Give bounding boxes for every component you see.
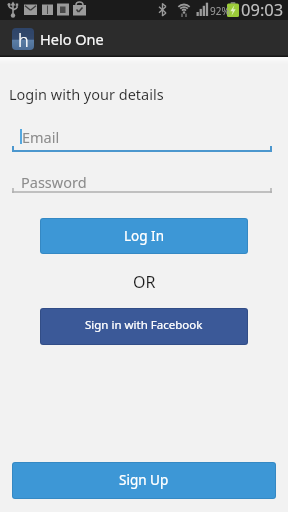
staticText: Helo One: [40, 29, 104, 49]
staticText: Sign in with Facebook: [85, 317, 203, 333]
staticText: Login with your details: [9, 84, 164, 104]
staticText: Sign Up: [119, 471, 169, 489]
button[interactable]: Log In: [40, 218, 248, 254]
staticText: OR: [133, 271, 156, 291]
button[interactable]: Sign Up: [12, 462, 276, 499]
staticText: 92%: [210, 4, 230, 18]
staticText: h: [18, 28, 29, 50]
button[interactable]: Password: [12, 158, 272, 193]
staticText: Password: [21, 172, 87, 192]
button[interactable]: Email: [12, 117, 272, 152]
button[interactable]: Sign in with Facebook: [40, 308, 248, 345]
staticText: 09:03: [241, 0, 284, 18]
staticText: Email: [22, 127, 60, 147]
staticText: Log In: [124, 227, 164, 245]
